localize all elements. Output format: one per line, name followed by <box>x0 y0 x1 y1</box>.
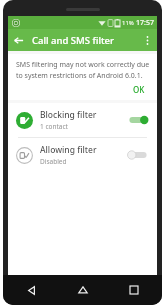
staticText: Call and SMS filter <box>32 34 115 47</box>
staticText: 1 contact <box>40 122 68 131</box>
staticText: Disabled <box>40 157 67 166</box>
button[interactable]: OK <box>127 82 151 97</box>
staticText: SMS filtering may not work correctly due… <box>16 60 151 80</box>
button[interactable]: More options <box>137 30 157 50</box>
button[interactable]: Recent apps <box>124 280 144 300</box>
button[interactable]: Back <box>8 30 28 50</box>
button[interactable]: Home <box>73 280 93 300</box>
button[interactable]: Blocking filter <box>8 103 157 137</box>
staticText: 17:57 <box>136 18 154 28</box>
staticText: Blocking filter <box>40 109 97 121</box>
staticText: OK <box>133 84 145 95</box>
button[interactable]: Toggle on <box>127 113 149 127</box>
button[interactable]: Back <box>21 280 41 300</box>
button[interactable]: Allowing filter <box>8 138 157 172</box>
staticText: Allowing filter <box>40 144 97 156</box>
staticText: 11% <box>122 19 134 27</box>
button[interactable]: Toggle off <box>127 148 149 162</box>
